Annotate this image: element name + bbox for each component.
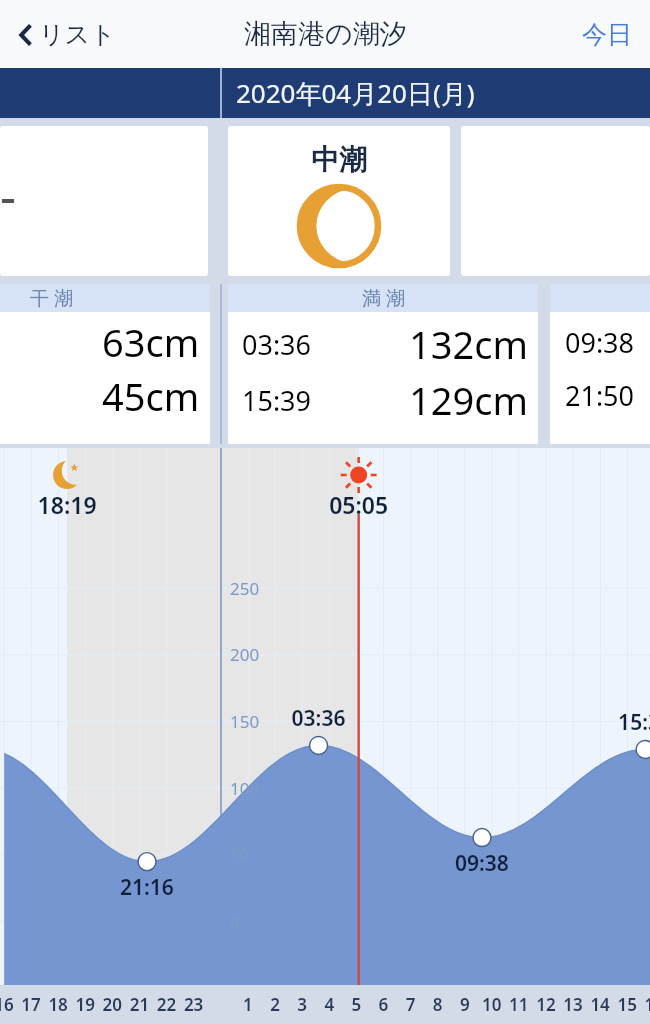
button[interactable]: 09:38: [550, 284, 650, 444]
staticText: 132cm: [352, 318, 528, 370]
button[interactable]: 今日: [564, 9, 650, 60]
staticText: 03:36: [242, 326, 352, 363]
button[interactable]: 15:39: [228, 374, 538, 426]
staticText: 干 潮: [30, 285, 73, 311]
button[interactable]: 干 潮: [0, 284, 210, 444]
staticText: 15:39: [242, 382, 352, 419]
button[interactable]: 中潮: [228, 126, 450, 276]
staticText: 中潮: [311, 142, 367, 177]
staticText: 45cm: [102, 370, 200, 422]
button[interactable]: 2020年04月20日(月): [222, 68, 650, 118]
button[interactable]: リスト: [10, 13, 122, 56]
staticText: 2020年04月20日(月): [236, 75, 475, 111]
button[interactable]: 03:36: [228, 318, 538, 370]
staticText: 129cm: [352, 374, 528, 426]
staticText: 09:38: [565, 324, 635, 361]
button[interactable]: [0, 126, 208, 276]
staticText: 満 潮: [362, 285, 405, 311]
staticText: 63cm: [102, 316, 200, 368]
staticText: 21:50: [565, 377, 635, 414]
staticText: 今日: [582, 19, 632, 50]
staticText: リスト: [39, 19, 116, 50]
staticText: 湘南港の潮汐: [244, 17, 407, 51]
button[interactable]: 満 潮: [228, 284, 538, 444]
